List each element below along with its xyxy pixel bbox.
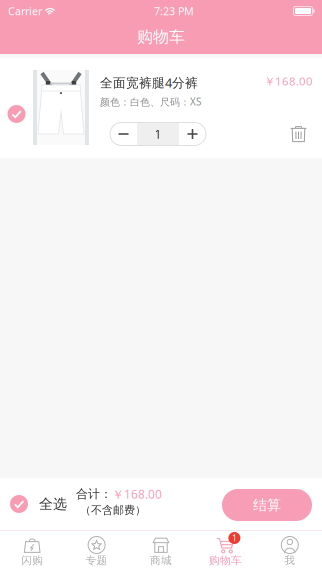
staticText: 专题 xyxy=(86,554,108,567)
staticText: 颜色：白色、尺码：XS xyxy=(100,95,201,108)
staticText: 1 xyxy=(154,126,161,142)
staticText: ￥168.00 xyxy=(264,73,313,89)
staticText: Carrier xyxy=(8,4,42,18)
button[interactable]: 专题 xyxy=(64,530,129,572)
staticText: 全选 xyxy=(39,495,67,513)
button[interactable]: 结算 xyxy=(222,489,312,521)
staticText: 购物车 xyxy=(209,554,242,567)
staticText: 我 xyxy=(284,554,295,567)
button[interactable]: Select item xyxy=(0,96,33,132)
staticText: ￥168.00 xyxy=(112,486,162,502)
staticText: 合计： xyxy=(76,486,112,501)
button[interactable]: 商城 xyxy=(129,530,193,572)
button[interactable]: Increase quantity xyxy=(179,122,206,145)
button[interactable]: 我 xyxy=(258,530,322,572)
button[interactable]: 全选 xyxy=(0,478,67,530)
button[interactable]: Decrease quantity xyxy=(110,122,137,145)
staticText: 商城 xyxy=(150,554,172,567)
button[interactable]: 闪购 xyxy=(0,530,64,572)
staticText: （不含邮费） xyxy=(80,503,146,517)
staticText: 闪购 xyxy=(21,554,43,567)
button[interactable]: Delete item xyxy=(290,124,307,143)
staticText: 1 xyxy=(232,532,237,544)
staticText: 7:23 PM xyxy=(154,4,194,18)
staticText: 结算 xyxy=(253,496,281,514)
button[interactable]: 1 xyxy=(193,530,258,572)
staticText: 全面宽裤腿4分裤 xyxy=(100,74,198,91)
staticText: 购物车 xyxy=(137,27,185,47)
